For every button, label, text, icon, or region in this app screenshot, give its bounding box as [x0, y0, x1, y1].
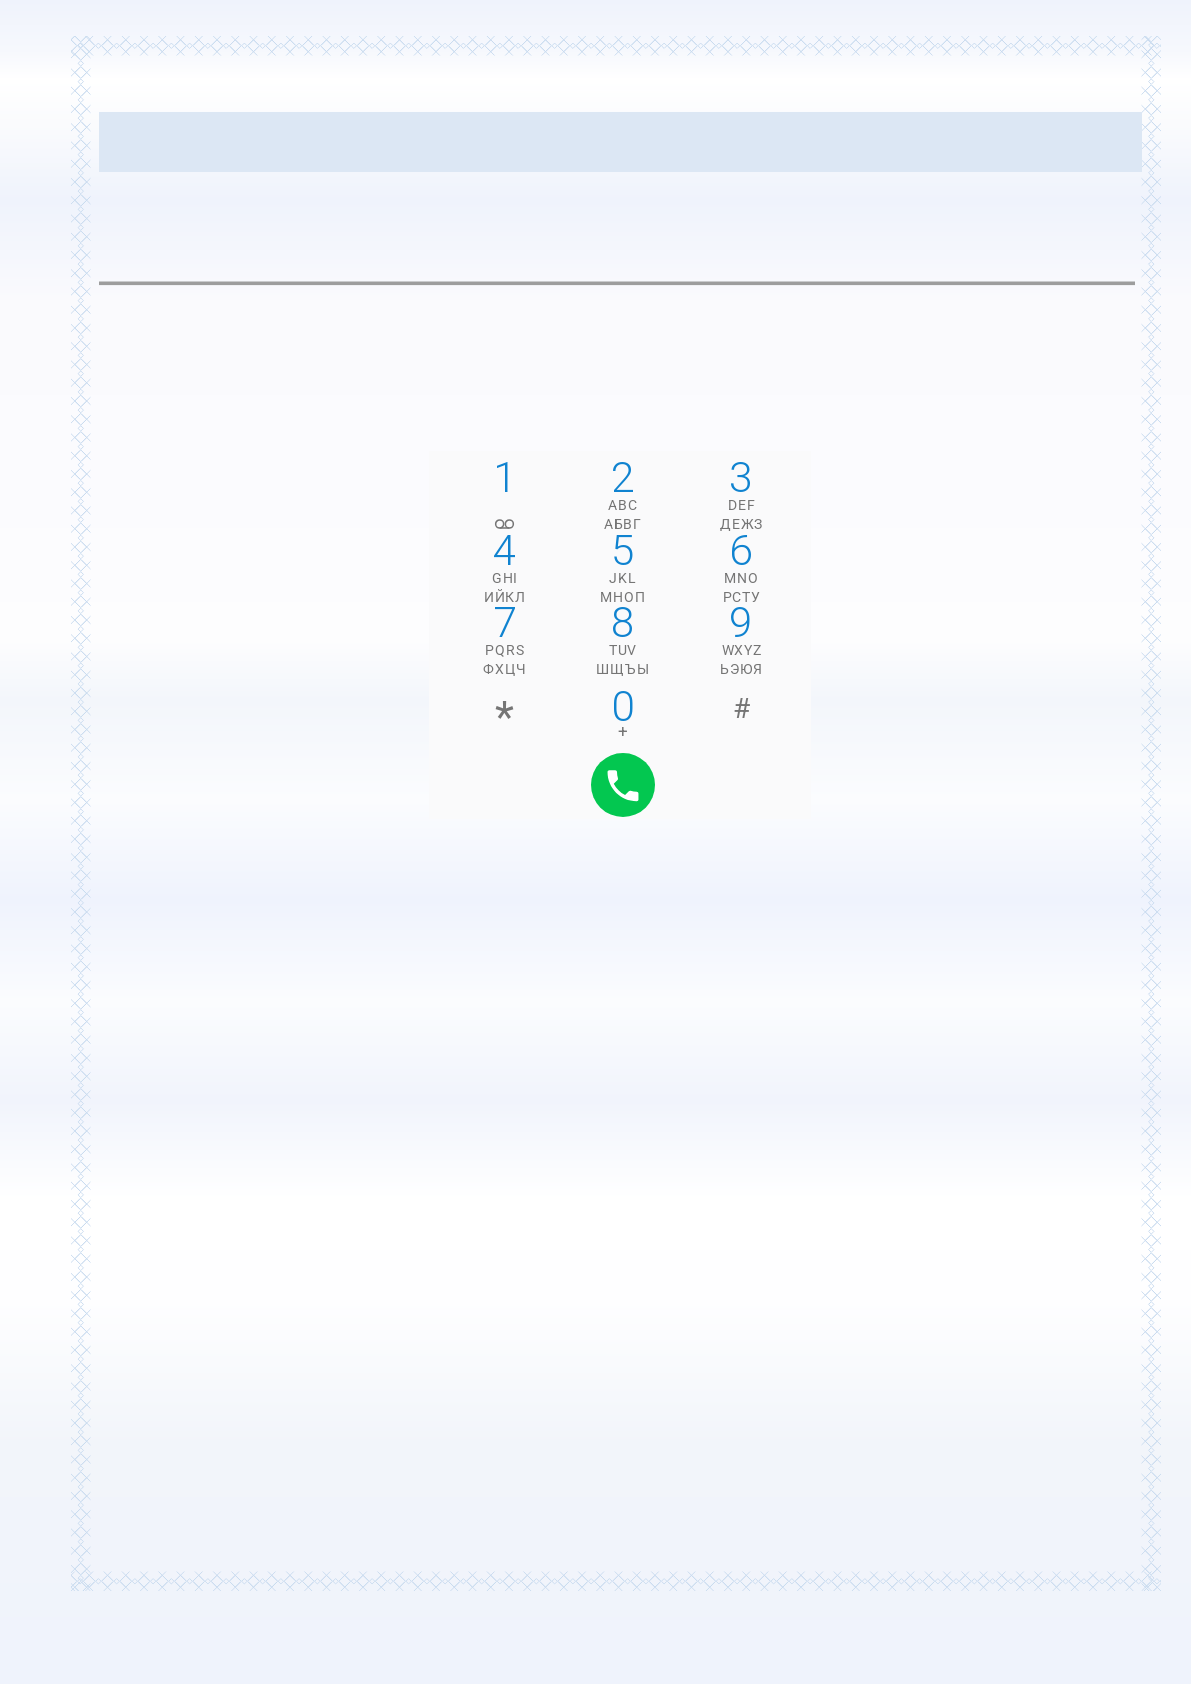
button[interactable]: hash — [682, 679, 800, 753]
button[interactable]: Call — [591, 753, 655, 817]
button[interactable]: 2 ABC — [564, 458, 682, 532]
button[interactable]: 6 MNO — [682, 532, 800, 606]
button[interactable]: 5 JKL — [564, 532, 682, 606]
button[interactable]: 0 plus — [564, 679, 682, 753]
button[interactable]: 3 DEF — [682, 458, 800, 532]
button[interactable]: 4 GHI — [446, 532, 564, 606]
button[interactable]: 9 WXYZ — [682, 606, 800, 680]
button[interactable]: 1 — [446, 458, 564, 532]
button[interactable]: 8 TUV — [564, 606, 682, 680]
button[interactable]: star — [446, 679, 564, 753]
button[interactable]: 7 PQRS — [446, 606, 564, 680]
